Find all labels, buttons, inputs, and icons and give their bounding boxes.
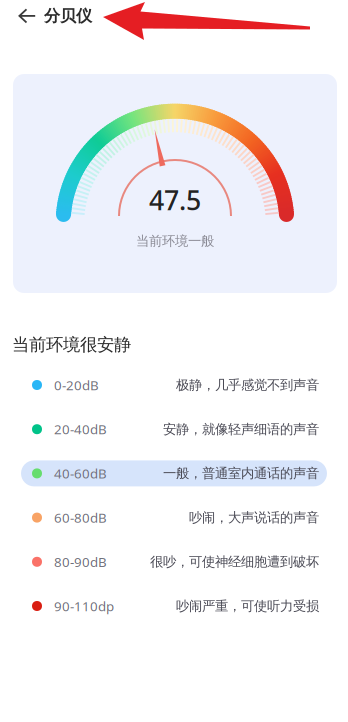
staticText: 40-60dB: [54, 464, 107, 482]
staticText: 吵闹，大声说话的声音: [189, 509, 319, 526]
staticText: 一般，普通室内通话的声音: [163, 465, 319, 482]
staticText: 很吵，可使神经细胞遭到破坏: [150, 554, 319, 570]
staticText: 极静，几乎感觉不到声音: [176, 377, 319, 393]
staticText: 90-110dp: [54, 597, 114, 615]
button[interactable]: 80-90dB: [21, 549, 327, 575]
staticText: 吵闹严重，可使听力受损: [176, 598, 319, 614]
staticText: 当前环境很安静: [12, 334, 131, 355]
button[interactable]: 40-60dB: [21, 460, 327, 486]
button[interactable]: Back: [8, 0, 38, 32]
button[interactable]: 60-80dB: [21, 505, 327, 531]
staticText: 80-90dB: [54, 553, 107, 571]
staticText: 当前环境一般: [136, 233, 214, 249]
staticText: 0-20dB: [54, 376, 99, 394]
staticText: 分贝仪: [44, 6, 92, 26]
button[interactable]: 0-20dB: [21, 372, 327, 398]
staticText: 60-80dB: [54, 509, 107, 526]
staticText: 20-40dB: [54, 420, 107, 438]
staticText: 47.5: [149, 182, 201, 218]
button[interactable]: 20-40dB: [21, 416, 327, 442]
button[interactable]: 90-110dp: [21, 593, 327, 619]
staticText: 安静，就像轻声细语的声音: [163, 421, 319, 437]
